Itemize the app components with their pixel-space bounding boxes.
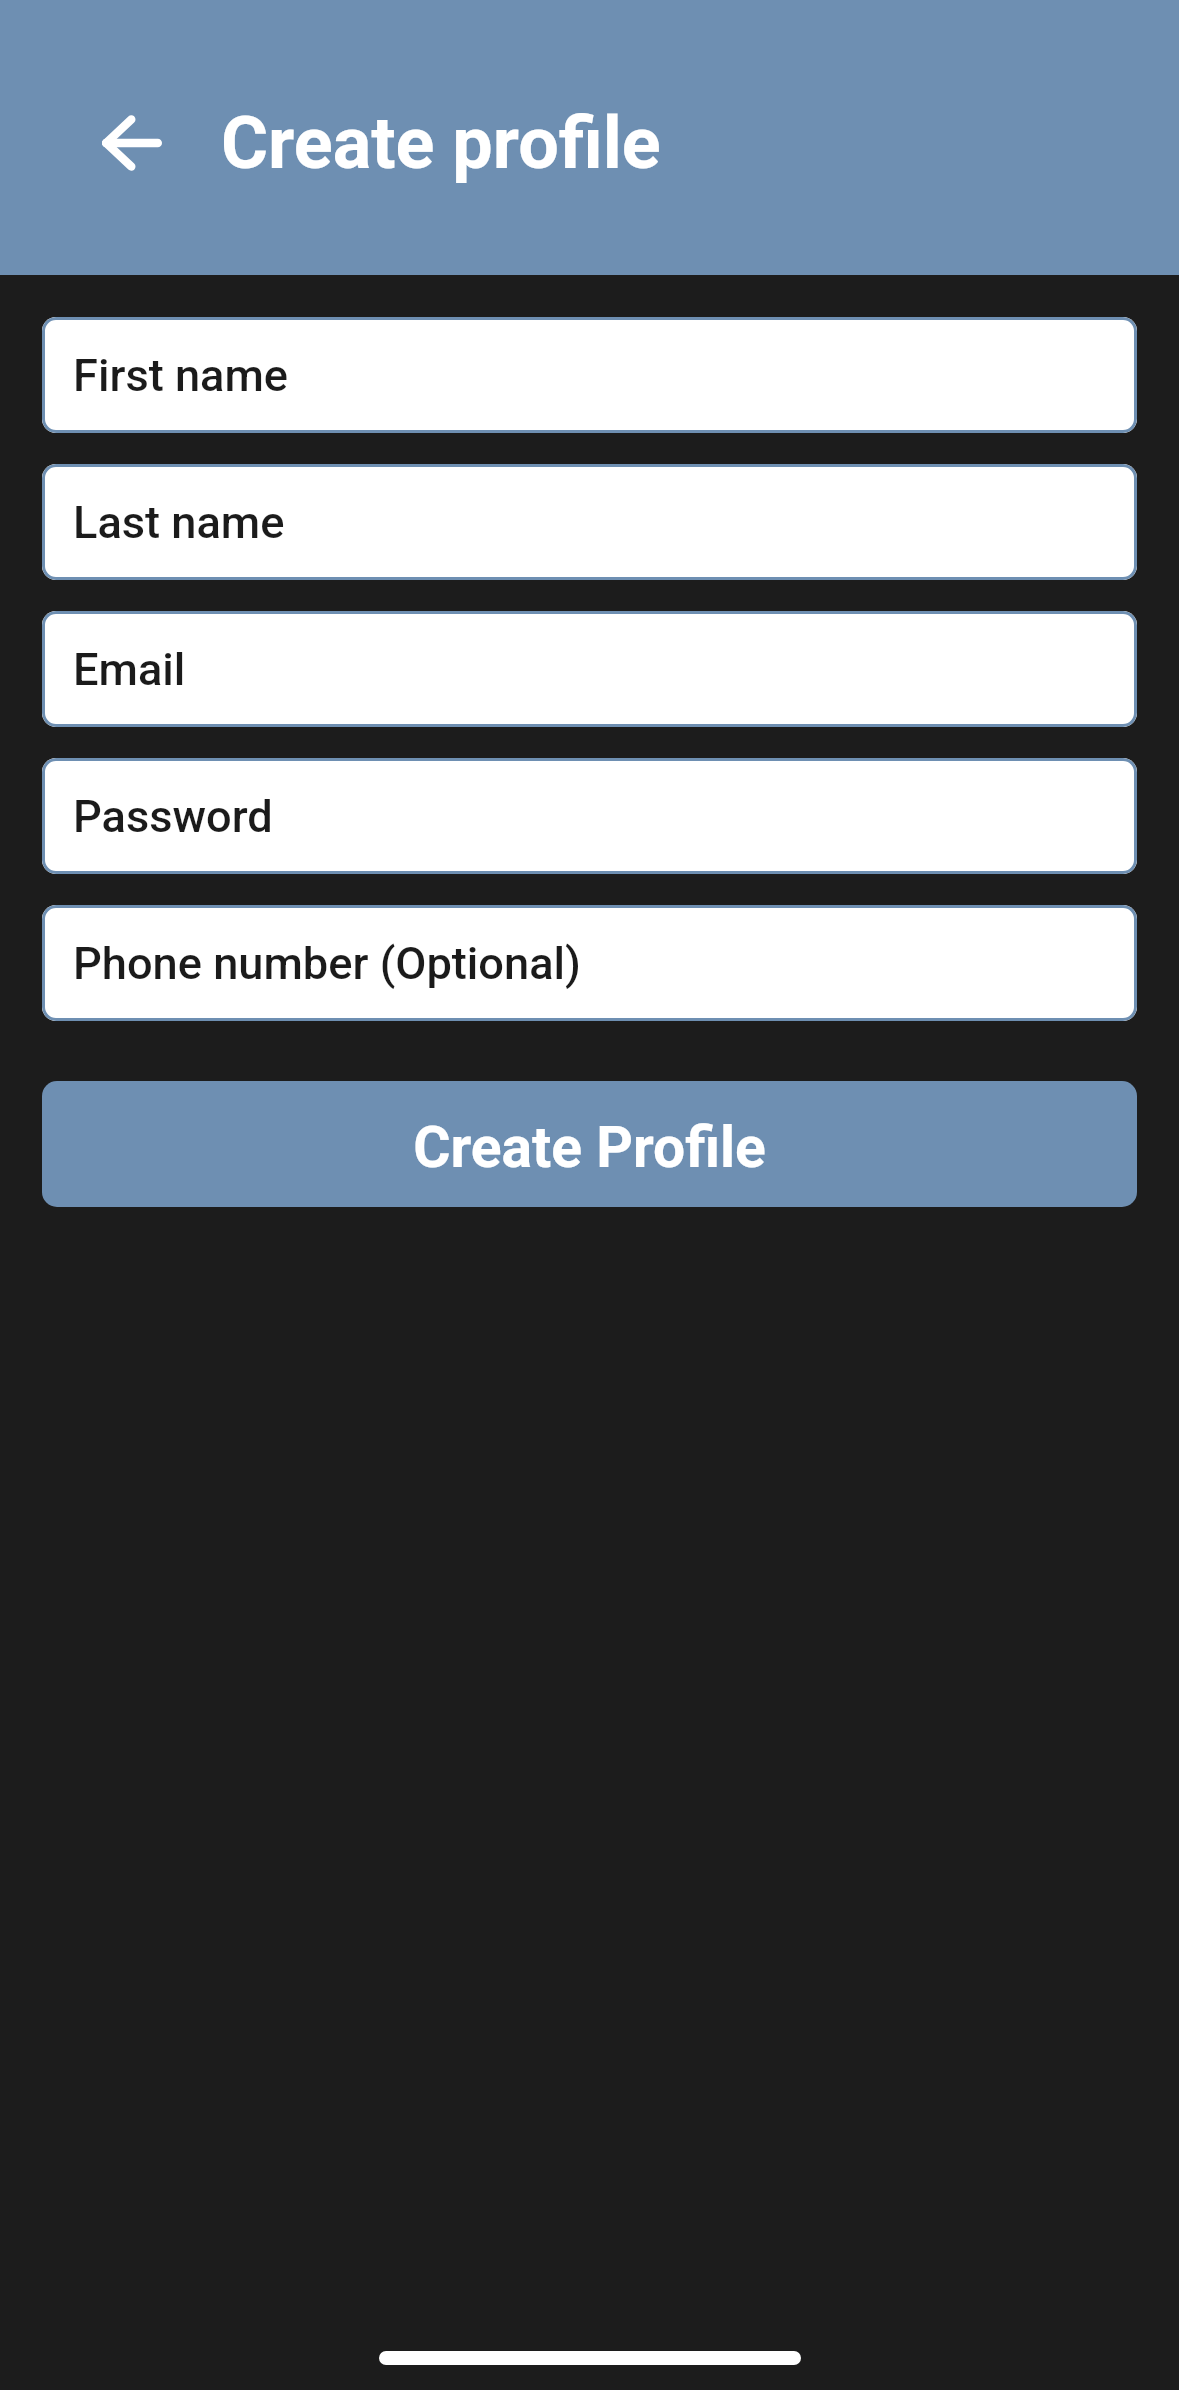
button[interactable]: Phone number (Optional) bbox=[42, 905, 1137, 1021]
staticText: Email bbox=[73, 643, 186, 696]
button[interactable]: Email bbox=[42, 611, 1137, 727]
staticText: Create profile bbox=[221, 101, 661, 185]
button[interactable]: Create Profile bbox=[42, 1081, 1137, 1207]
button[interactable]: Last name bbox=[42, 464, 1137, 580]
button[interactable]: Password bbox=[42, 758, 1137, 874]
staticText: Last name bbox=[73, 496, 285, 549]
staticText: Create Profile bbox=[413, 1114, 766, 1181]
staticText: Password bbox=[73, 790, 273, 843]
staticText: First name bbox=[73, 349, 288, 402]
button[interactable]: First name bbox=[42, 317, 1137, 433]
button[interactable]: Back bbox=[92, 103, 172, 183]
staticText: Phone number (Optional) bbox=[73, 937, 581, 990]
